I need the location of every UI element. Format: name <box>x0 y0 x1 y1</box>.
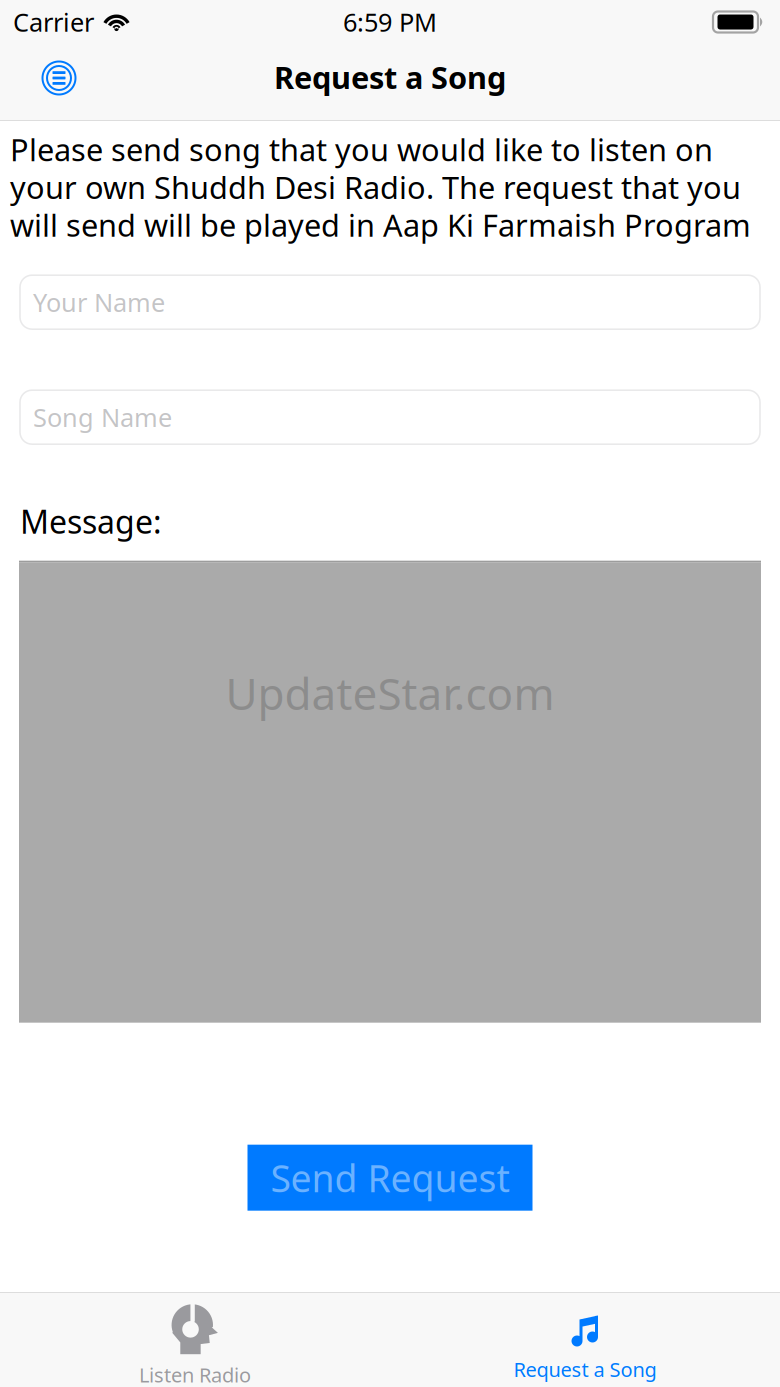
staticText: Request a Song <box>274 57 506 97</box>
staticText: UpdateStar.com <box>225 664 554 722</box>
button[interactable]: Request a Song <box>390 1293 780 1387</box>
button[interactable]: Your Name <box>20 275 760 329</box>
staticText: 6:59 PM <box>343 5 437 39</box>
button[interactable]: Send Request <box>247 1145 532 1211</box>
button[interactable]: Menu <box>0 48 94 116</box>
button[interactable]: Song Name <box>20 390 760 444</box>
button[interactable]: Listen Radio <box>0 1293 390 1387</box>
staticText: Please send song that you would like to … <box>10 129 751 245</box>
staticText: Message: <box>20 500 162 543</box>
staticText: Your Name <box>33 285 165 319</box>
staticText: Send Request <box>270 1153 509 1202</box>
staticText: Listen Radio <box>139 1361 251 1387</box>
staticText: Carrier <box>13 5 94 39</box>
staticText: Request a Song <box>513 1356 656 1383</box>
staticText: Song Name <box>33 400 172 434</box>
